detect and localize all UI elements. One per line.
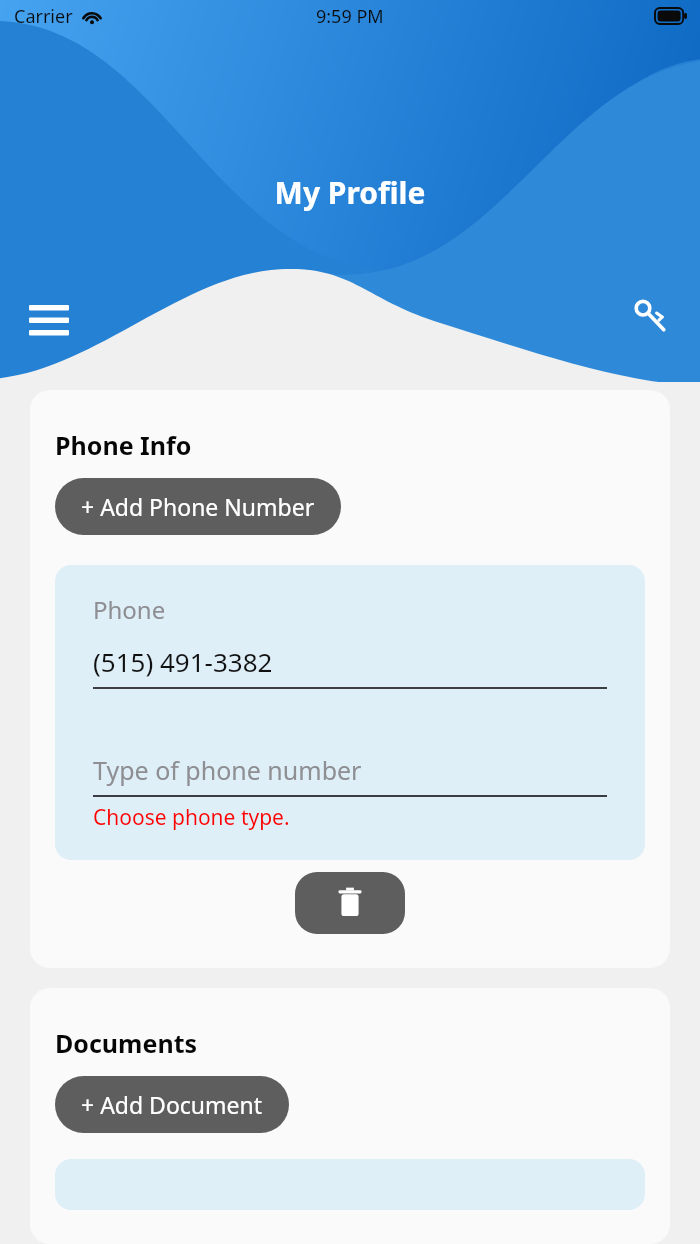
button[interactable]: + Add Document [55, 1076, 289, 1133]
button[interactable]: Password [622, 288, 680, 346]
staticText: + Add Document [81, 1089, 263, 1120]
button[interactable]: + Add Phone Number [55, 478, 341, 535]
staticText: Phone Info [55, 428, 192, 462]
staticText: Choose phone type. [93, 803, 290, 832]
staticText: 9:59 PM [316, 4, 384, 29]
staticText: My Profile [0, 172, 700, 213]
button[interactable]: Delete [295, 872, 405, 934]
button[interactable]: Menu [22, 292, 76, 346]
staticText: Carrier [14, 4, 73, 29]
staticText: (515) 491-3382 [93, 644, 273, 679]
staticText: Type of phone number [93, 753, 362, 787]
staticText: Phone [93, 593, 166, 626]
staticText: + Add Phone Number [81, 491, 315, 522]
staticText: Documents [55, 1026, 198, 1060]
